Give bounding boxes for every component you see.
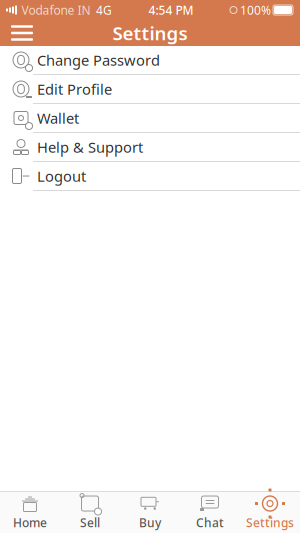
button[interactable]: Settings — [240, 492, 300, 533]
staticText: Settings — [246, 514, 294, 530]
button[interactable]: Home — [0, 492, 60, 533]
staticText: Wallet — [37, 108, 79, 128]
staticText: Sell — [80, 514, 100, 530]
staticText: Vodafone IN — [21, 2, 90, 18]
staticText: Home — [13, 514, 47, 530]
staticText: Settings — [112, 21, 187, 45]
button[interactable]: Logout — [0, 162, 300, 191]
staticText: Chat — [196, 514, 224, 530]
button[interactable]: Menu — [0, 20, 44, 46]
staticText: Logout — [37, 166, 86, 186]
staticText: 4G — [96, 2, 112, 18]
staticText: Edit Profile — [37, 79, 112, 99]
button[interactable]: Buy — [120, 492, 180, 533]
staticText: 4:54 PM — [148, 2, 193, 18]
button[interactable]: Change Password — [0, 46, 300, 75]
button[interactable]: Wallet — [0, 104, 300, 133]
button[interactable]: Help & Support — [0, 133, 300, 162]
staticText: 100% — [240, 2, 271, 18]
button[interactable]: Sell — [60, 492, 120, 533]
staticText: Help & Support — [37, 137, 143, 157]
staticText: Change Password — [37, 50, 160, 70]
button[interactable]: Edit Profile — [0, 75, 300, 104]
button[interactable]: Chat — [180, 492, 240, 533]
staticText: Buy — [139, 514, 161, 530]
